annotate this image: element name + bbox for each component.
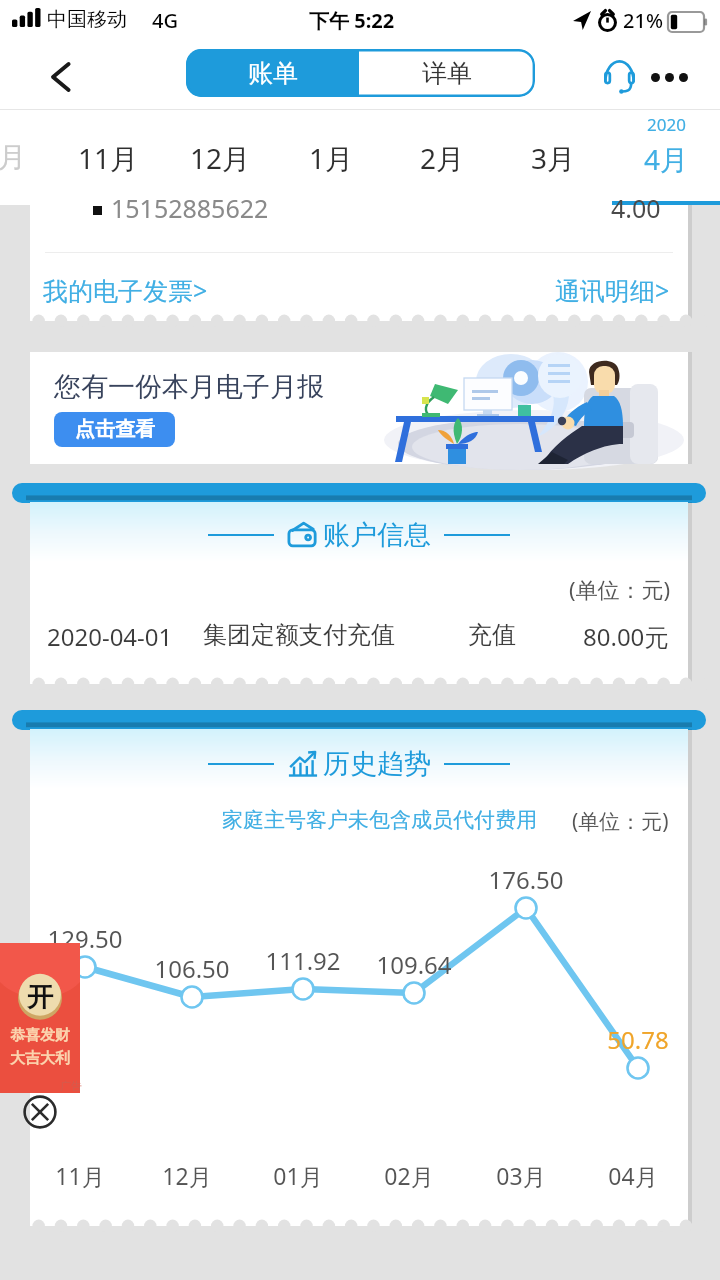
staticText: 106.50 [147,952,237,985]
button[interactable]: More options [644,52,694,102]
button[interactable]: 2020 [612,110,720,205]
staticText: 中国移动 [47,7,127,32]
button[interactable]: 11月 [58,110,158,205]
staticText: 账单 [248,58,298,89]
staticText: 1月 [309,139,354,177]
staticText: 02月 [369,1160,449,1191]
staticText: 开 [0,981,80,1014]
staticText: 01月 [258,1160,338,1191]
staticText: 176.50 [481,863,571,896]
staticText: 11月 [78,139,139,177]
staticText: 账户信息 [323,518,431,552]
staticText: 109.64 [369,948,459,981]
button[interactable]: 账单 [186,49,359,97]
button[interactable]: 12月 [170,110,270,205]
staticText: 2020 [647,113,686,136]
staticText: 我的电子发票> [43,273,208,307]
staticText: 80.00元 [583,620,669,653]
staticText: 12月 [190,139,251,177]
button[interactable]: Customer service [594,52,644,102]
staticText: 3月 [531,139,576,177]
button[interactable]: 3月 [503,110,603,205]
staticText: 下午 5:22 [309,7,395,34]
button[interactable]: 我的电子发票> [35,263,216,317]
button[interactable]: 开 [0,943,80,1093]
staticText: 通讯明细> [555,273,670,307]
button[interactable]: 点击查看 [54,412,175,447]
staticText: 50.78 [593,1023,683,1056]
button[interactable]: 您有一份本月电子月报 [30,352,688,464]
staticText: 点击查看 [75,417,155,442]
staticText: 大吉大利 [0,1049,80,1068]
staticText: 广告 [60,1079,82,1093]
staticText: 03月 [481,1160,561,1191]
staticText: 恭喜发财 [0,1026,80,1045]
staticText: 15152885622 [111,191,269,225]
staticText: 04月 [593,1160,673,1191]
staticText: 111.92 [258,944,348,977]
staticText: 集团定额支付充值 [203,620,395,650]
staticText: 2020-04-01 [47,620,173,653]
button[interactable]: 1月 [281,110,381,205]
staticText: 12月 [147,1160,227,1191]
staticText: 家庭主号客户未包含成员代付费用 [222,807,537,833]
staticText: 4.00 [611,191,661,225]
staticText: 4月 [644,140,689,178]
staticText: (单位：元) [569,574,671,604]
staticText: 充值 [468,620,516,650]
staticText: (单位：元) [572,807,669,836]
staticText: 4G [152,7,178,34]
button[interactable]: 2月 [392,110,492,205]
staticText: 129.50 [40,922,130,955]
staticText: 月 [0,140,26,175]
button[interactable]: Close ad [23,1095,57,1129]
button[interactable]: 通讯明细> [547,263,678,317]
staticText: 历史趋势 [323,747,431,781]
button[interactable]: 详单 [359,49,535,97]
staticText: 21% [623,7,663,34]
staticText: 2月 [420,139,465,177]
staticText: 您有一份本月电子月报 [54,370,324,404]
button[interactable]: Back [14,44,108,110]
staticText: 详单 [422,58,472,89]
staticText: 11月 [40,1160,120,1191]
